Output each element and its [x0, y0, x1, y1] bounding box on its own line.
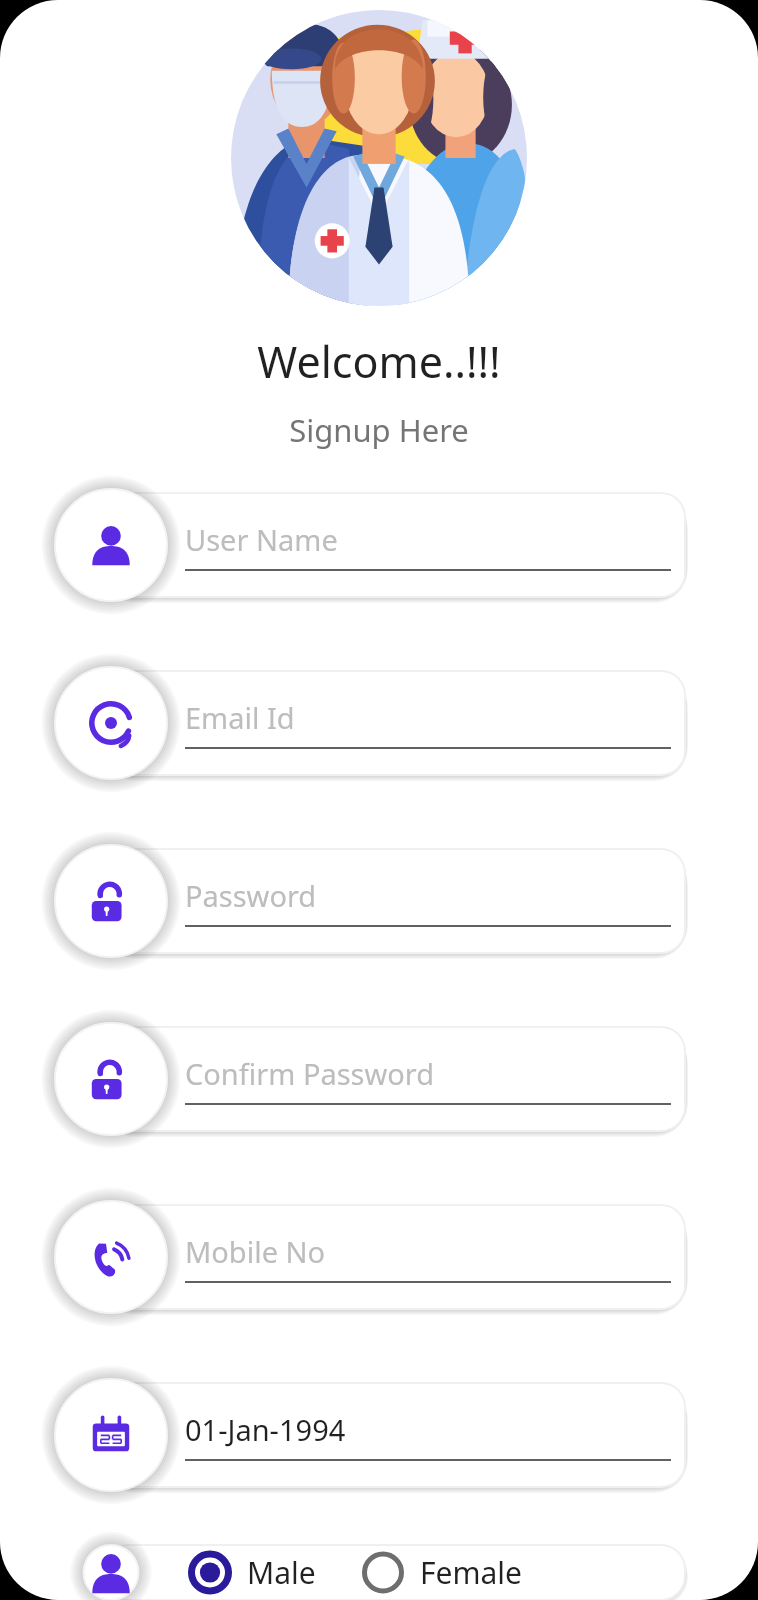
staticText: Mobile No [185, 1232, 326, 1271]
button[interactable]: Confirm Password [55, 1023, 685, 1135]
button[interactable]: User Name [55, 489, 685, 601]
button[interactable]: Password [55, 845, 685, 957]
staticText: Female [420, 1552, 523, 1593]
staticText: Confirm Password [185, 1054, 435, 1093]
staticText: Male [247, 1552, 316, 1593]
staticText: Email Id [185, 698, 295, 737]
button[interactable]: Mobile No [55, 1201, 685, 1313]
staticText: 01-Jan-1994 [185, 1410, 346, 1449]
staticText: Password [185, 876, 317, 915]
button[interactable]: 01-Jan-1994 [55, 1379, 685, 1491]
button[interactable]: Male [183, 1545, 320, 1600]
button[interactable]: Female [356, 1545, 527, 1600]
staticText: Signup Here [289, 409, 469, 451]
button[interactable]: Email Id [55, 667, 685, 779]
staticText: User Name [185, 520, 338, 559]
staticText: Welcome..!!! [257, 332, 501, 391]
